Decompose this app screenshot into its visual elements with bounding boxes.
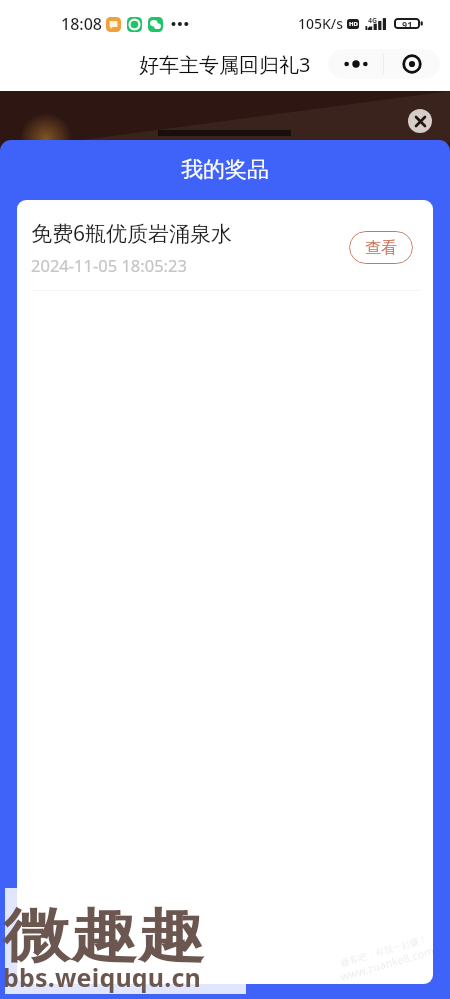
staticText: 微趣趣 — [3, 900, 205, 972]
button[interactable]: Close mini program — [384, 49, 440, 79]
staticText: 赚客吧，有我一起赚！ — [339, 933, 429, 968]
button[interactable]: More — [328, 49, 383, 79]
button[interactable]: Close — [408, 109, 432, 133]
staticText: 查看 — [365, 238, 397, 258]
staticText: HD — [349, 20, 358, 28]
staticText: 4G — [368, 16, 378, 26]
staticText: bbs.weiququ.cn — [3, 960, 202, 994]
staticText: 免费6瓶优质岩涌泉水 — [31, 219, 233, 248]
staticText: 105K/s — [298, 14, 344, 33]
staticText: 18:08 — [61, 13, 102, 35]
button[interactable]: 查看 — [349, 231, 413, 264]
staticText: 好车主专属回归礼3 — [139, 51, 311, 78]
button[interactable]: 免费6瓶优质岩涌泉水 — [17, 200, 433, 291]
staticText: www.zuanke8.com — [338, 943, 436, 984]
staticText: 我的奖品 — [181, 156, 269, 184]
staticText: 2024-11-05 18:05:23 — [31, 254, 187, 276]
staticText: 91 — [402, 18, 413, 29]
